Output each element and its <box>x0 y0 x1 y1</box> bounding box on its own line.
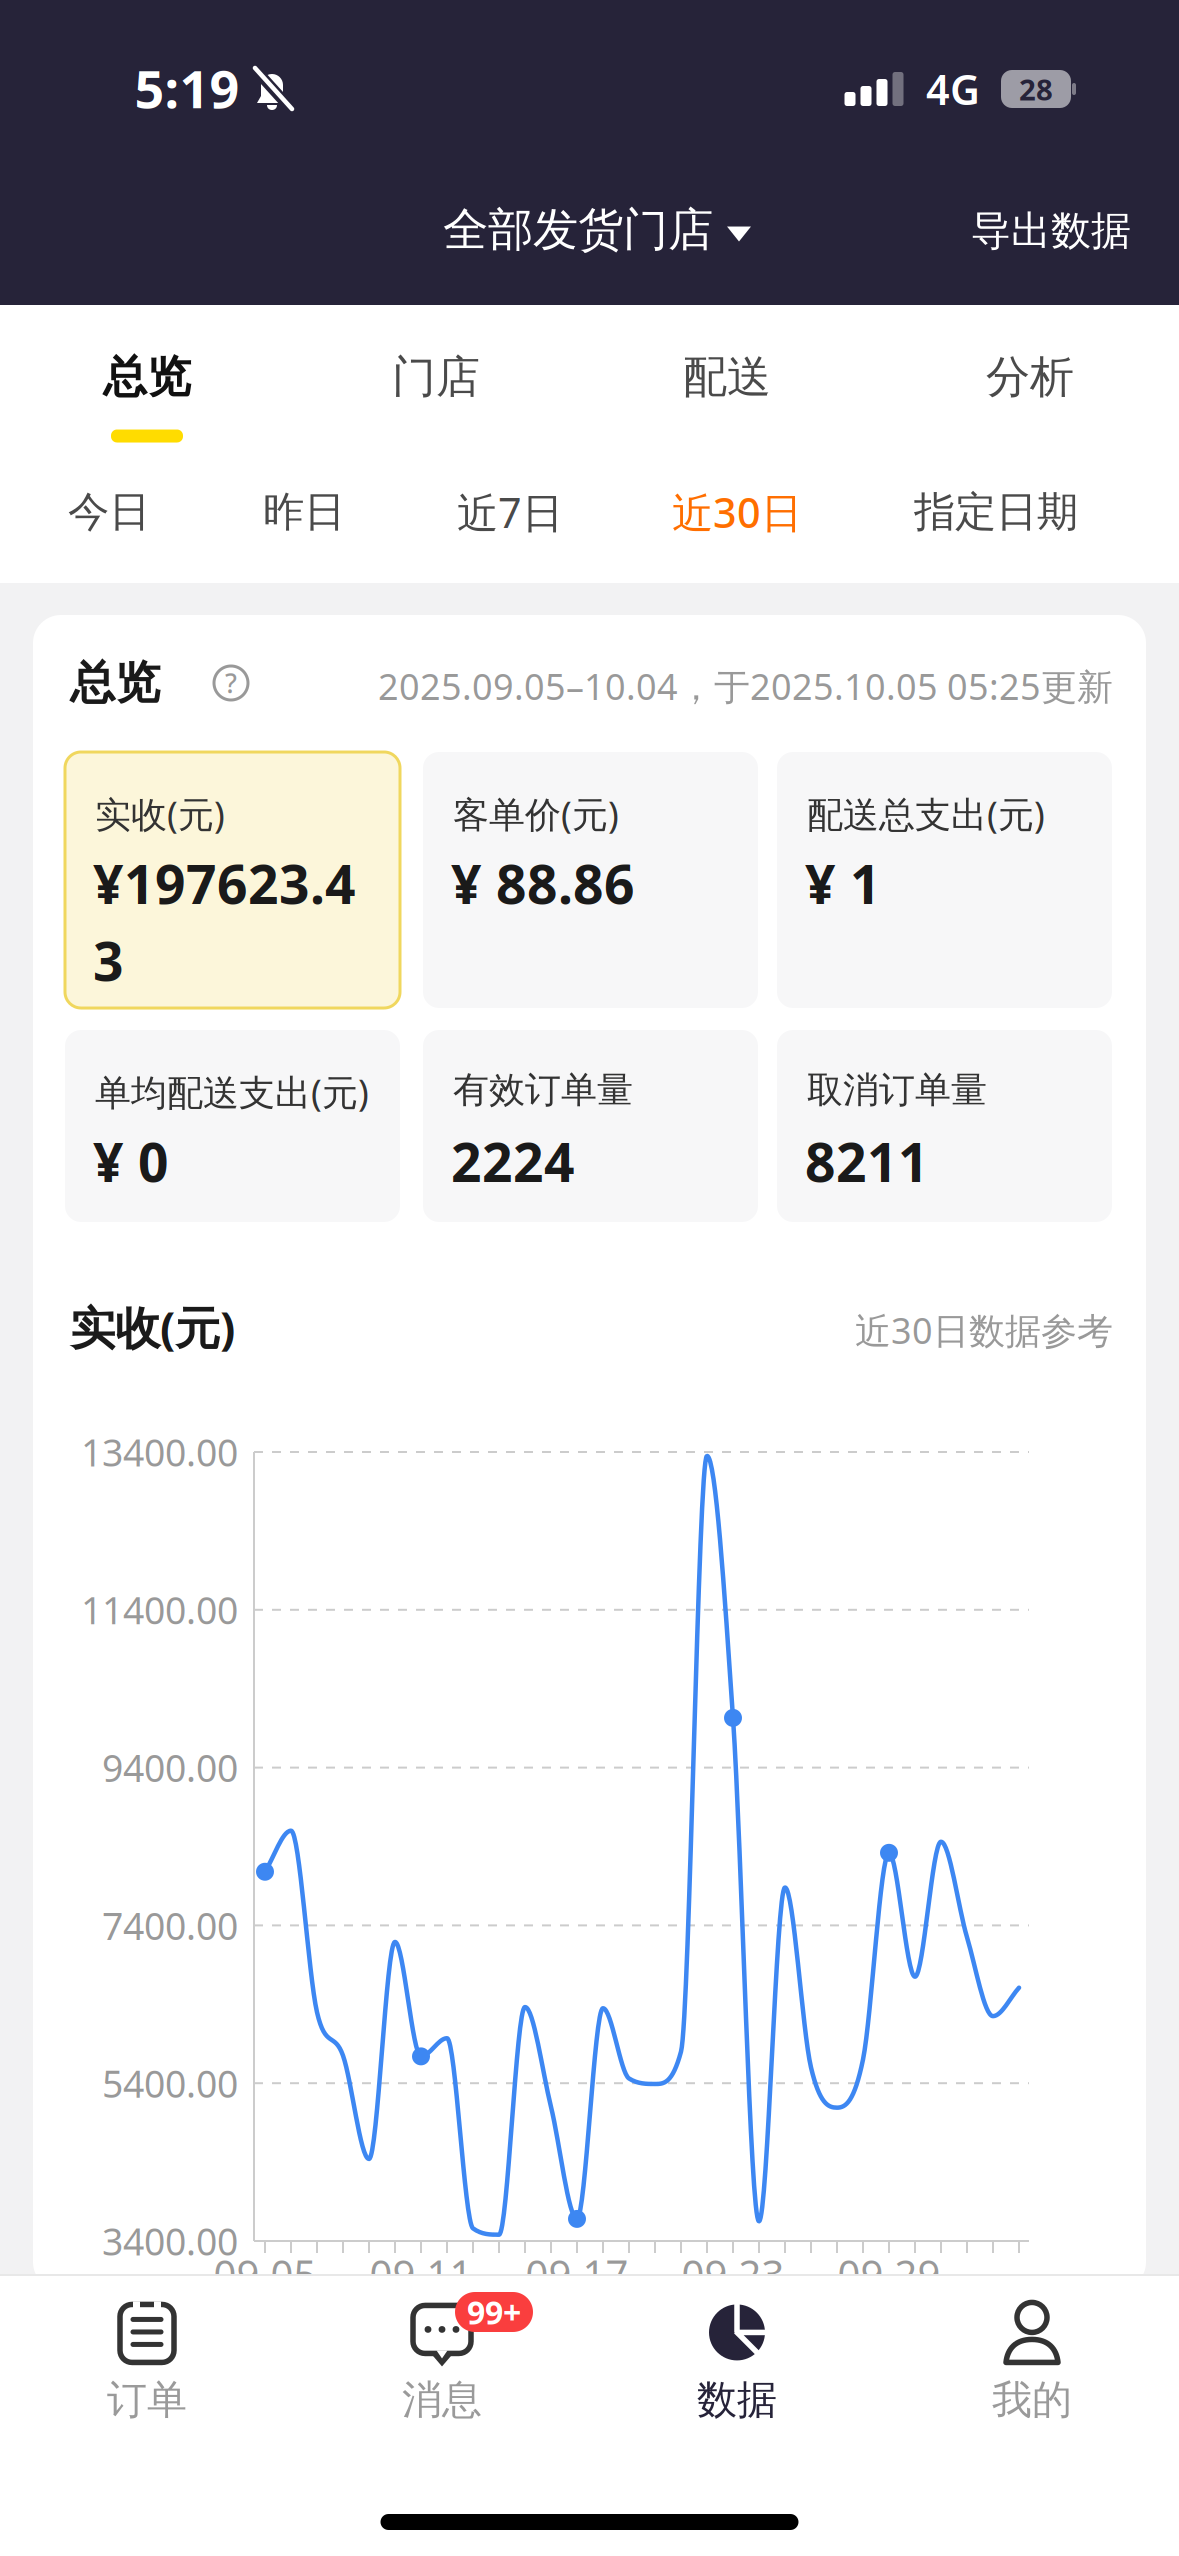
button[interactable]: 全部发货门店 <box>443 202 751 258</box>
staticText: 8211 <box>805 1126 929 1197</box>
button[interactable]: 取消订单量 <box>777 1030 1112 1222</box>
button[interactable]: 今日 <box>34 467 184 557</box>
button[interactable]: 昨日 <box>229 467 379 557</box>
staticText: 门店 <box>392 350 480 404</box>
staticText: 配送总支出(元) <box>807 790 1045 838</box>
staticText: 消息 <box>402 2375 482 2424</box>
staticText: 5400.00 <box>102 2058 238 2108</box>
staticText: 订单 <box>107 2375 187 2424</box>
staticText: 今日 <box>68 487 150 537</box>
staticText: 昨日 <box>263 487 345 537</box>
staticText: 11400.00 <box>81 1585 238 1635</box>
staticText: 总览 <box>70 655 160 711</box>
staticText: 7400.00 <box>102 1901 238 1950</box>
staticText: ¥ 1 <box>805 848 881 919</box>
staticText: 近7日 <box>457 485 563 539</box>
staticText: 近30日数据参考 <box>855 1306 1113 1354</box>
button[interactable]: 近30日 <box>642 467 832 557</box>
staticText: 99+ <box>467 2291 521 2333</box>
staticText: 有效订单量 <box>453 1068 633 1112</box>
staticText: 2025.09.05–10.04，于2025.10.05 05:25更新 <box>378 662 1113 710</box>
button[interactable]: 实收(元) <box>65 752 400 1008</box>
staticText: 5:19 <box>134 53 239 123</box>
staticText: 28 <box>1019 69 1053 108</box>
button[interactable]: 消息 <box>317 2280 567 2445</box>
staticText: 数据 <box>697 2375 777 2424</box>
staticText: 13400.00 <box>81 1427 238 1477</box>
button[interactable]: 配送 <box>617 327 837 427</box>
staticText: 实收(元) <box>70 1297 235 1357</box>
staticText: 实收(元) <box>95 790 225 838</box>
staticText: 取消订单量 <box>807 1068 987 1112</box>
staticText: ¥ 88.86 <box>451 848 635 919</box>
button[interactable]: 导出数据 <box>971 206 1131 255</box>
staticText: 分析 <box>986 350 1074 404</box>
staticText: 导出数据 <box>971 206 1131 255</box>
button[interactable]: 我的 <box>907 2280 1157 2445</box>
staticText: 客单价(元) <box>453 790 619 838</box>
staticText: ? <box>225 665 237 701</box>
button[interactable]: 数据 <box>612 2280 862 2445</box>
staticText: ¥197623.4 <box>93 848 356 919</box>
staticText: 09.11 <box>369 2247 472 2300</box>
staticText: 09.17 <box>525 2247 628 2300</box>
button[interactable]: 指定日期 <box>886 467 1106 557</box>
staticText: 近30日 <box>672 485 802 539</box>
button[interactable]: 订单 <box>22 2280 272 2445</box>
staticText: 指定日期 <box>914 487 1078 537</box>
staticText: 全部发货门店 <box>443 202 713 258</box>
staticText: 09.23 <box>681 2247 784 2300</box>
staticText: 09.29 <box>837 2247 940 2300</box>
staticText: 我的 <box>992 2375 1072 2424</box>
staticText: 9400.00 <box>102 1743 238 1792</box>
button[interactable]: 总览 <box>37 327 257 427</box>
button[interactable]: 近7日 <box>425 467 595 557</box>
button[interactable]: 有效订单量 <box>423 1030 758 1222</box>
staticText: ¥ 0 <box>93 1126 169 1197</box>
staticText: 3400.00 <box>102 2216 238 2266</box>
staticText: 2224 <box>451 1126 575 1197</box>
staticText: 3 <box>93 925 124 996</box>
button[interactable]: 分析 <box>920 327 1140 427</box>
button[interactable]: 客单价(元) <box>423 752 758 1008</box>
button[interactable]: 门店 <box>326 327 546 427</box>
staticText: 总览 <box>103 350 191 404</box>
button[interactable]: 配送总支出(元) <box>777 752 1112 1008</box>
button[interactable]: 单均配送支出(元) <box>65 1030 400 1222</box>
staticText: 单均配送支出(元) <box>95 1068 369 1116</box>
button[interactable]: 帮助 <box>209 661 253 705</box>
staticText: 09.05 <box>213 2247 316 2300</box>
staticText: 配送 <box>683 350 771 404</box>
staticText: 4G <box>926 62 980 116</box>
